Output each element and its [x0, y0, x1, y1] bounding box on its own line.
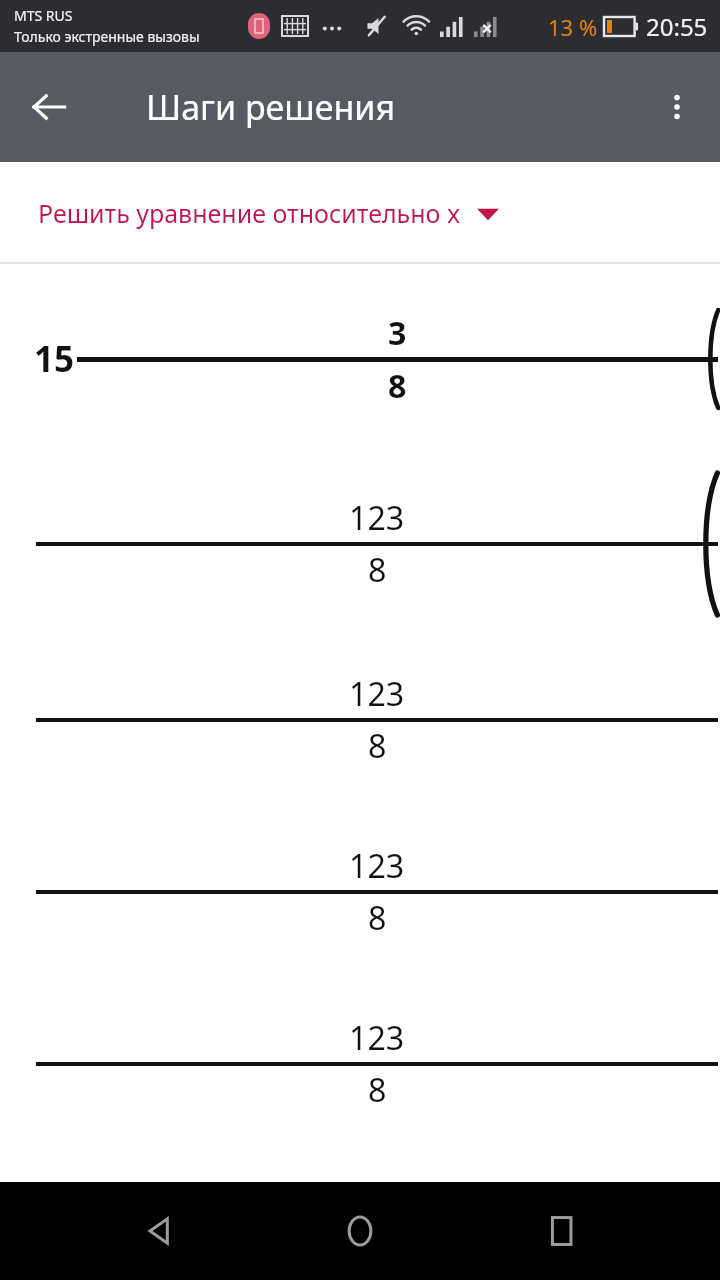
button[interactable]: Ещё — [644, 74, 710, 140]
button[interactable]: Назад — [14, 72, 84, 142]
button[interactable]: Главный экран — [317, 1188, 403, 1274]
staticText: 20:55 — [646, 10, 708, 43]
staticText: 8 — [368, 548, 387, 592]
staticText: Только экстренные вызовы — [14, 27, 200, 46]
staticText: 123 — [349, 1016, 405, 1060]
staticText: 15 — [34, 335, 75, 383]
staticText: 123 — [349, 844, 405, 888]
button[interactable]: Назад — [116, 1188, 202, 1274]
staticText: Шаги решения — [146, 84, 396, 130]
staticText: 123 — [349, 496, 405, 540]
staticText: 8 — [368, 1068, 387, 1112]
staticText: 8 — [388, 364, 407, 408]
staticText: MTS RUS — [14, 6, 73, 25]
staticText: 8 — [368, 896, 387, 940]
staticText: 8 — [368, 724, 387, 768]
staticText: 3 — [388, 311, 407, 355]
button[interactable]: Решить уравнение относительно x — [0, 192, 720, 240]
staticText: Решить уравнение относительно x — [38, 196, 461, 230]
staticText: 123 — [349, 672, 405, 716]
button[interactable]: Обзор — [519, 1188, 605, 1274]
staticText: 13 % — [548, 12, 598, 42]
